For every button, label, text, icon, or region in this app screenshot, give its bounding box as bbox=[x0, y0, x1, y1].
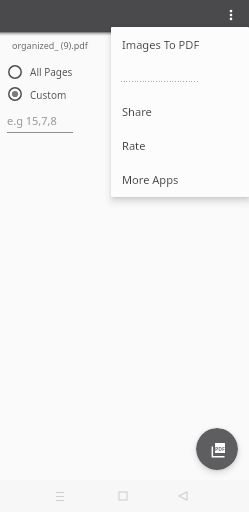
staticText: Share bbox=[122, 104, 152, 119]
button[interactable]: Recents bbox=[48, 484, 72, 508]
staticText: e.g 15,7,8 bbox=[7, 113, 57, 128]
button[interactable]: Rate bbox=[111, 131, 249, 159]
staticText: All Pages bbox=[30, 65, 73, 79]
staticText: PDF bbox=[215, 445, 225, 452]
staticText: Rate bbox=[122, 138, 146, 153]
button[interactable]: Home bbox=[111, 484, 135, 508]
button[interactable]: More options bbox=[216, 0, 246, 32]
button[interactable]: Share bbox=[111, 97, 249, 125]
button[interactable]: More Apps bbox=[111, 165, 249, 193]
button[interactable]: Images To PDF bbox=[111, 30, 249, 58]
staticText: Images To PDF bbox=[122, 37, 200, 52]
button[interactable]: Create PDF bbox=[196, 428, 238, 470]
button[interactable]: Custom bbox=[0, 82, 110, 106]
staticText: organized_ (9).pdf bbox=[12, 39, 88, 51]
button[interactable]: All Pages bbox=[0, 60, 110, 84]
button[interactable]: Back bbox=[171, 484, 195, 508]
staticText: Custom bbox=[30, 88, 67, 102]
staticText: More Apps bbox=[122, 172, 179, 187]
